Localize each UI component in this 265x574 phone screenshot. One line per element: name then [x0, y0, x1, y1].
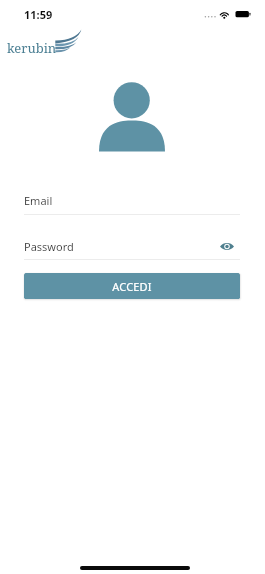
staticText: 11:59	[24, 7, 53, 22]
button[interactable]: Password	[24, 236, 240, 256]
staticText: Email	[24, 193, 53, 208]
button[interactable]: Email	[24, 190, 240, 210]
button[interactable]: Show password	[217, 236, 237, 256]
button[interactable]: ACCEDI	[24, 273, 240, 299]
staticText: kerubin	[7, 39, 57, 57]
staticText: Password	[24, 239, 74, 254]
staticText: ACCEDI	[112, 279, 152, 294]
